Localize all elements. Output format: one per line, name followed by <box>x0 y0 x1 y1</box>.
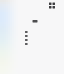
button[interactable]: Grid view <box>46 0 58 11</box>
button[interactable] <box>25 31 35 33</box>
button[interactable] <box>25 35 35 37</box>
button[interactable] <box>25 43 35 45</box>
button[interactable] <box>25 39 35 41</box>
